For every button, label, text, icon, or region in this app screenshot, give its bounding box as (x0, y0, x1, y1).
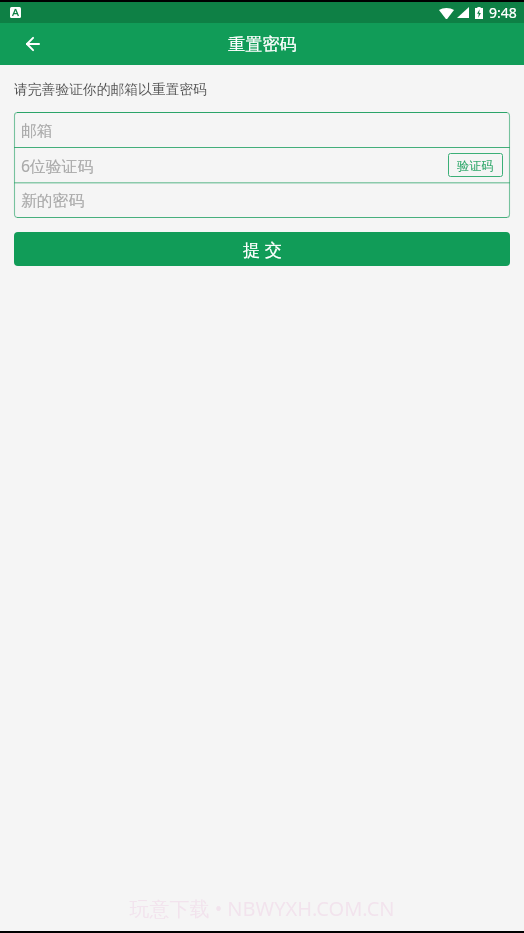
staticText: 请完善验证你的邮箱以重置密码 (14, 81, 208, 98)
button[interactable]: 邮箱 (14, 112, 510, 147)
button[interactable]: 新的密码 (14, 182, 510, 218)
staticText: 邮箱 (21, 121, 53, 141)
button[interactable]: 6位验证码 (14, 147, 510, 182)
staticText: 玩意下载 • NBWYXH.COM.CN (0, 895, 524, 922)
button[interactable]: 验证码 (448, 153, 503, 177)
staticText: 提 交 (243, 238, 282, 261)
button[interactable]: Back (12, 23, 54, 65)
staticText: 验证码 (457, 158, 494, 173)
staticText: 9:48 (489, 3, 517, 22)
staticText: 新的密码 (21, 191, 85, 211)
button[interactable]: 提 交 (14, 232, 510, 266)
staticText: 6位验证码 (21, 155, 94, 177)
staticText: 重置密码 (228, 33, 297, 55)
